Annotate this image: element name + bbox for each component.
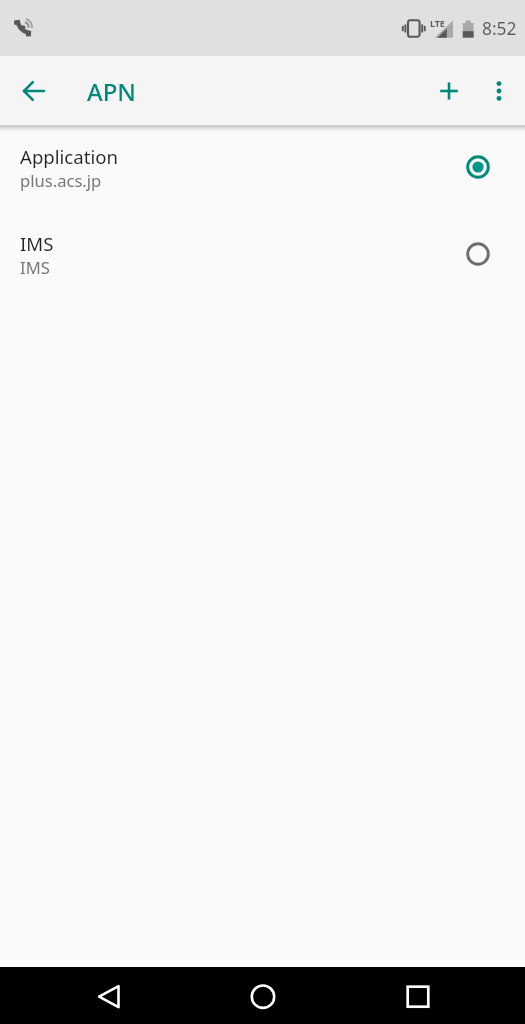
button[interactable]: Recent apps — [389, 967, 446, 1024]
button[interactable]: IMS — [0, 213, 525, 300]
staticText: 8:52 — [482, 16, 517, 40]
staticText: LTE — [430, 17, 445, 29]
staticText: Application — [20, 144, 118, 169]
button[interactable]: Select Application — [454, 143, 502, 191]
staticText: IMS — [20, 231, 54, 256]
button[interactable]: Back — [6, 63, 62, 119]
button[interactable]: Application — [0, 126, 525, 213]
staticText: IMS — [20, 256, 50, 279]
button[interactable]: Add APN — [421, 63, 477, 119]
button[interactable]: Home — [234, 967, 291, 1024]
staticText: APN — [87, 75, 136, 108]
staticText: plus.acs.jp — [20, 169, 102, 192]
button[interactable]: More options — [471, 63, 525, 119]
button[interactable]: Back — [80, 967, 137, 1024]
button[interactable]: Select IMS — [454, 230, 502, 278]
